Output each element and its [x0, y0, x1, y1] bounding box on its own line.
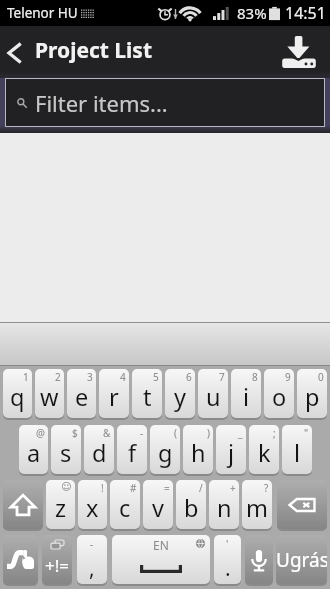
staticText: . — [225, 554, 231, 583]
button[interactable]: # — [110, 480, 140, 529]
button[interactable]: Filter items... — [6, 79, 324, 126]
staticText: , — [89, 554, 95, 583]
staticText: +!= — [45, 554, 70, 577]
staticText: - — [140, 426, 144, 440]
button[interactable]: " — [282, 425, 312, 474]
button[interactable]: & — [84, 425, 114, 474]
button[interactable]: + — [209, 480, 239, 529]
staticText: 4 — [120, 370, 126, 384]
button[interactable]: ☺ — [46, 480, 75, 529]
staticText: EN — [153, 537, 169, 553]
staticText: w — [40, 381, 59, 413]
button[interactable]: 0 — [297, 369, 327, 418]
staticText: s — [60, 437, 72, 469]
staticText: + — [230, 481, 236, 495]
staticText: 14:51 — [285, 2, 326, 24]
button[interactable]: 2 — [35, 369, 64, 418]
staticText: 83% — [237, 3, 267, 23]
staticText: " — [304, 426, 309, 440]
button[interactable]: _ — [216, 425, 246, 474]
button[interactable]: Space — [112, 535, 210, 584]
staticText: 0 — [318, 370, 324, 384]
button[interactable]: ( — [150, 425, 180, 474]
staticText: q — [10, 381, 25, 413]
staticText: _ — [238, 426, 243, 440]
staticText: - — [90, 537, 94, 551]
button[interactable]: Backspace — [277, 480, 327, 529]
staticText: Project List — [35, 36, 153, 65]
button[interactable]: Download — [268, 30, 330, 76]
button[interactable]: 8 — [231, 369, 261, 418]
staticText: y — [174, 381, 186, 413]
staticText: o — [272, 381, 287, 413]
button[interactable]: = — [143, 480, 173, 529]
staticText: / — [199, 481, 203, 495]
button[interactable]: ) — [183, 425, 213, 474]
button[interactable]: Handwriting — [3, 535, 38, 584]
button[interactable]: Back — [0, 30, 28, 76]
staticText: x — [86, 492, 99, 524]
staticText: 8 — [252, 370, 258, 384]
staticText: ( — [174, 426, 177, 440]
staticText: @ — [36, 426, 45, 440]
staticText: v — [152, 492, 164, 524]
button[interactable]: 6 — [165, 369, 195, 418]
staticText: t — [143, 381, 152, 413]
staticText: Filter items... — [35, 88, 168, 118]
button[interactable]: / — [176, 480, 206, 529]
staticText: $ — [72, 426, 78, 440]
staticText: ) — [207, 426, 210, 440]
button[interactable]: 7 — [198, 369, 228, 418]
button[interactable]: ? — [242, 480, 272, 529]
button[interactable]: ! — [78, 480, 107, 529]
button[interactable]: 3 — [67, 369, 96, 418]
button[interactable]: Go — [276, 535, 327, 584]
staticText: m — [246, 492, 268, 524]
staticText: 5 — [153, 370, 159, 384]
staticText: h — [191, 437, 206, 469]
staticText: 6 — [186, 370, 192, 384]
staticText: e — [75, 381, 89, 413]
staticText: & — [103, 426, 111, 440]
button[interactable]: $ — [51, 425, 81, 474]
staticText: Ugrás — [276, 547, 327, 573]
staticText: n — [217, 492, 232, 524]
button[interactable]: @ — [19, 425, 48, 474]
staticText: b — [184, 492, 199, 524]
button[interactable]: Shift — [3, 480, 43, 529]
staticText: p — [305, 381, 320, 413]
staticText: z — [55, 492, 67, 524]
staticText: ; — [273, 426, 276, 440]
staticText: i — [243, 381, 250, 413]
button[interactable]: 1 — [3, 369, 32, 418]
button[interactable]: ; — [249, 425, 279, 474]
staticText: c — [119, 492, 131, 524]
staticText: 2 — [55, 370, 61, 384]
staticText: ? — [264, 481, 269, 495]
staticText: f — [128, 437, 137, 469]
staticText: 7 — [219, 370, 225, 384]
staticText: = — [164, 481, 170, 495]
staticText: 1 — [23, 370, 29, 384]
staticText: ☺ — [61, 481, 72, 493]
button[interactable]: - — [117, 425, 147, 474]
staticText: Telenor HU — [7, 4, 78, 22]
staticText: g — [158, 437, 173, 469]
button[interactable]: - — [77, 535, 107, 584]
staticText: 3 — [87, 370, 93, 384]
staticText: r — [109, 381, 119, 413]
staticText: ! — [101, 481, 104, 495]
staticText: a — [27, 437, 41, 469]
staticText: j — [228, 437, 235, 469]
button[interactable]: Symbols — [42, 535, 72, 584]
button[interactable]: Voice input — [245, 535, 273, 584]
button[interactable]: 5 — [132, 369, 162, 418]
button[interactable]: 4 — [99, 369, 129, 418]
staticText: ' — [226, 537, 229, 551]
button[interactable]: ' — [214, 535, 241, 584]
staticText: l — [294, 437, 301, 469]
button[interactable]: 9 — [264, 369, 294, 418]
staticText: d — [92, 437, 107, 469]
staticText: 9 — [285, 370, 291, 384]
staticText: k — [258, 437, 271, 469]
